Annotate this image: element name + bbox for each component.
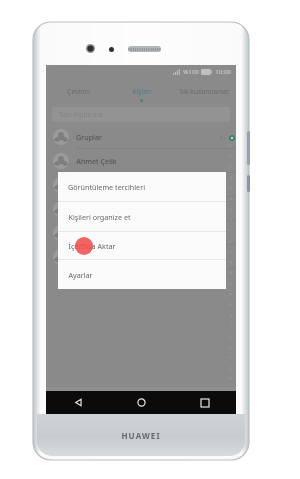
button[interactable]: Kişiler xyxy=(110,78,173,104)
staticText: %100 xyxy=(183,68,199,76)
staticText: U xyxy=(229,334,232,339)
button[interactable]: Ayarlar xyxy=(58,260,226,289)
staticText: R xyxy=(229,302,232,307)
button[interactable]: Sık kullanılanlar xyxy=(173,78,236,104)
staticText: P xyxy=(229,292,232,297)
staticText: L xyxy=(230,249,232,254)
button[interactable]: Gruplar xyxy=(46,125,236,148)
staticText: Y xyxy=(229,355,232,360)
button[interactable]: Yeliz Elverir xyxy=(46,245,236,268)
staticText: M xyxy=(229,260,233,265)
staticText: A xyxy=(229,133,232,138)
button[interactable]: Görüntüleme tercihleri xyxy=(58,172,226,201)
staticText: E xyxy=(230,175,232,180)
button[interactable]: Yeni kişi xyxy=(46,387,110,414)
staticText: Görüntüleme tercihleri xyxy=(68,182,145,192)
staticText: Ayşe Yılmaz xyxy=(76,180,116,190)
button[interactable]: Çevirici xyxy=(46,78,110,104)
staticText: Kişileri organize et xyxy=(68,212,131,222)
staticText: G xyxy=(229,196,232,201)
staticText: T xyxy=(230,323,232,328)
staticText: Gruplar xyxy=(76,132,102,142)
staticText: Ara xyxy=(138,404,146,410)
button[interactable]: Ayşe Yılmaz xyxy=(46,173,236,196)
staticText: Menü xyxy=(198,404,211,410)
staticText: Sık kullanılanlar xyxy=(179,87,230,96)
button[interactable]: Ara xyxy=(110,387,173,414)
staticText: F xyxy=(230,186,232,191)
staticText: D xyxy=(229,164,232,169)
staticText: Tüm kişide ara xyxy=(58,110,103,119)
button[interactable]: Mehmet Demir xyxy=(46,197,236,220)
staticText: HUAWEI xyxy=(121,430,161,441)
button[interactable]: Kişileri organize et xyxy=(58,202,226,231)
button[interactable]: Menü xyxy=(173,387,236,414)
staticText: 10:00 xyxy=(215,68,231,76)
button[interactable]: Home xyxy=(110,391,173,414)
button[interactable]: İçe/Dışa Aktar xyxy=(58,232,226,259)
staticText: Yeliz Elverir xyxy=(76,252,115,262)
staticText: Z xyxy=(229,366,232,371)
staticText: H xyxy=(229,207,232,212)
staticText: İçe/Dışa Aktar xyxy=(68,241,116,251)
button[interactable]: Recent apps xyxy=(173,391,236,414)
staticText: O xyxy=(229,281,232,286)
staticText: B xyxy=(229,143,232,148)
staticText: Zeynep Kaya xyxy=(76,228,119,238)
staticText: Ayarlar xyxy=(68,270,93,280)
staticText: Kişiler xyxy=(132,87,152,96)
staticText: K xyxy=(229,239,232,244)
staticText: # xyxy=(229,376,232,381)
staticText: N xyxy=(229,270,232,275)
staticText: Yeni kişi xyxy=(69,404,87,410)
staticText: V xyxy=(229,345,232,350)
staticText: S xyxy=(230,313,232,318)
staticText: Çevirici xyxy=(67,87,90,96)
staticText: Ahmet Çelik xyxy=(76,156,117,166)
button[interactable]: Zeynep Kaya xyxy=(46,221,236,244)
button[interactable]: Ahmet Çelik xyxy=(46,149,236,172)
button[interactable]: Back xyxy=(46,391,110,414)
